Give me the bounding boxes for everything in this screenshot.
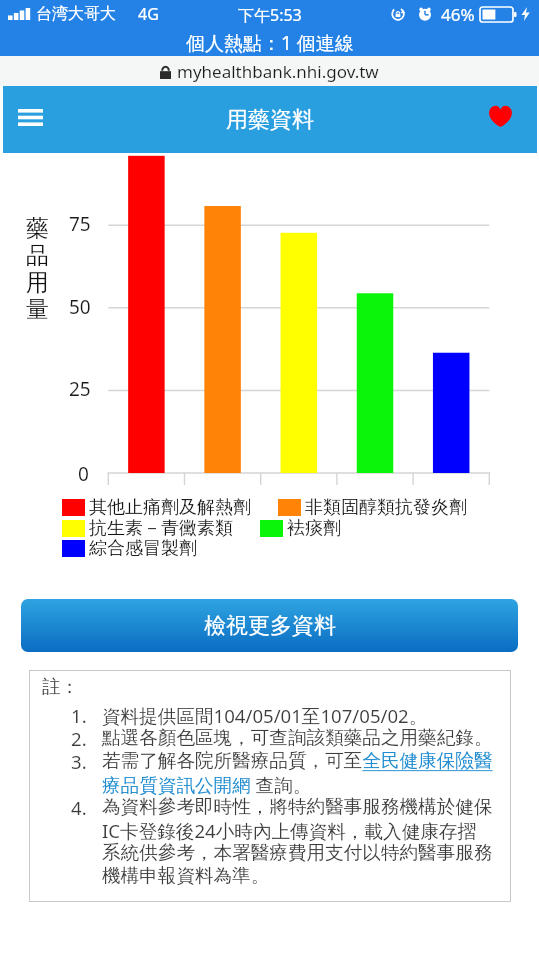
staticText: 個人熱點：1 個連線 — [186, 30, 354, 56]
staticText: 用藥資料 — [226, 106, 314, 134]
staticText: 50 — [69, 294, 91, 320]
staticText: 1. — [71, 703, 87, 726]
staticText: 袪痰劑 — [287, 517, 341, 540]
staticText: 46% — [441, 3, 475, 26]
staticText: myhealthbank.nhi.gov.tw — [177, 60, 379, 83]
staticText: 檢視更多資料 — [204, 612, 336, 640]
staticText: 綜合感冒製劑 — [89, 537, 197, 560]
staticText: 註： — [42, 675, 80, 698]
staticText: 下午5:53 — [238, 4, 302, 26]
staticText: IC卡登錄後24小時內上傳資料，載入健康存摺 — [102, 818, 477, 841]
staticText: 2. — [71, 726, 87, 749]
staticText: 用 — [26, 268, 49, 295]
button[interactable]: Favorite — [482, 98, 518, 134]
staticText: 為資料參考即時性，將特約醫事服務機構於健保 — [102, 795, 493, 818]
staticText: 品 — [26, 241, 49, 268]
staticText: 量 — [26, 295, 49, 322]
staticText: 系統供參考，本署醫療費用支付以特約醫事服務 — [102, 841, 493, 864]
staticText: 藥 — [26, 214, 49, 241]
staticText: 4. — [71, 795, 87, 818]
staticText: 25 — [69, 376, 91, 402]
staticText: 非類固醇類抗發炎劑 — [305, 496, 467, 519]
staticText: 療品質資訊公開網 查詢。 — [102, 772, 312, 795]
staticText: 0 — [78, 461, 89, 487]
staticText: 台湾大哥大 — [36, 4, 116, 24]
button[interactable]: Menu — [10, 97, 50, 137]
staticText: 機構申報資料為準。 — [102, 864, 270, 887]
staticText: 其他止痛劑及解熱劑 — [89, 496, 251, 519]
button[interactable]: 檢視更多資料 — [21, 599, 518, 652]
staticText: 點選各顏色區塊，可查詢該類藥品之用藥紀錄。 — [102, 726, 493, 749]
staticText: 抗生素－青黴素類 — [89, 517, 233, 540]
staticText: 若需了解各院所醫療品質，可至全民健康保險醫 — [102, 749, 493, 772]
staticText: 3. — [71, 749, 87, 772]
staticText: 資料提供區間104/05/01至107/05/02。 — [102, 703, 428, 726]
staticText: 75 — [69, 211, 91, 237]
staticText: 4G — [138, 3, 159, 25]
